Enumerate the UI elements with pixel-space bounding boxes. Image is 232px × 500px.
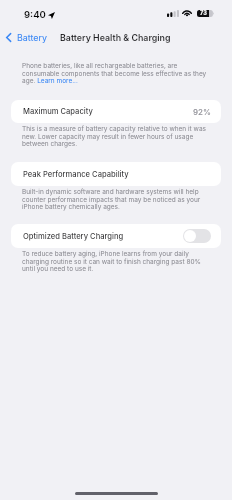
button[interactable]: Battery <box>4 30 55 45</box>
staticText: Optimized Battery Charging <box>23 232 124 241</box>
staticText: Peak Performance Capability <box>23 170 129 179</box>
staticText: 9:40 <box>24 9 46 21</box>
staticText: 92% <box>193 107 211 117</box>
staticText: Battery Health & Charging <box>60 32 171 43</box>
staticText: Phone batteries, like all rechargeable b… <box>22 62 208 84</box>
button[interactable]: Peak Performance Capability <box>11 162 221 186</box>
staticText: This is a measure of battery capacity re… <box>22 125 208 147</box>
button[interactable]: Optimized Battery Charging toggle <box>183 229 211 243</box>
staticText: Maximum Capacity <box>23 107 93 116</box>
staticText: To reduce battery aging, iPhone learns f… <box>22 250 208 272</box>
staticText: Built-in dynamic software and hardware s… <box>22 188 208 210</box>
button[interactable]: Maximum Capacity <box>11 100 221 123</box>
staticText: Battery <box>17 32 47 43</box>
staticText: 73 <box>200 10 207 17</box>
